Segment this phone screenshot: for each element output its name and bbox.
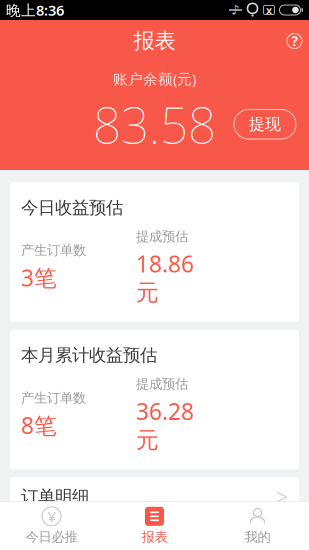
staticText: 提现 [249,114,281,134]
staticText: ♪ [231,2,240,17]
staticText: 报表 [133,28,175,54]
staticText: 产生订单数 [21,242,86,259]
button[interactable]: 报表 [103,502,206,550]
staticText: 本月累计收益预估 [21,345,157,366]
staticText: 产生订单数 [21,390,86,406]
staticText: 提成预估 [136,228,188,245]
staticText: 今日收益预估 [21,197,123,218]
button[interactable]: ¥ [0,502,103,550]
staticText: 18.86元 [136,249,194,307]
staticText: 36.28元 [136,396,194,454]
staticText: 我的 [244,529,270,545]
staticText: 晚上8:36 [6,0,64,20]
staticText: 报表 [141,529,167,545]
staticText: 8笔 [21,410,57,440]
staticText: 83.58 [93,91,216,157]
staticText: 提成预估 [136,376,188,392]
button[interactable]: 订单明细 [10,477,299,516]
staticText: > [276,483,288,511]
staticText: ? [291,32,297,50]
button[interactable]: 帮助 [280,26,309,55]
staticText: 订单明细 [21,486,89,507]
button[interactable]: 我的 [206,502,309,550]
staticText: 3笔 [21,263,57,293]
staticText: x [266,3,272,17]
staticText: 账户余额(元) [113,69,196,88]
staticText: 今日必推 [25,529,77,545]
staticText: ¥ [47,507,55,526]
button[interactable]: 提现 [234,109,296,139]
